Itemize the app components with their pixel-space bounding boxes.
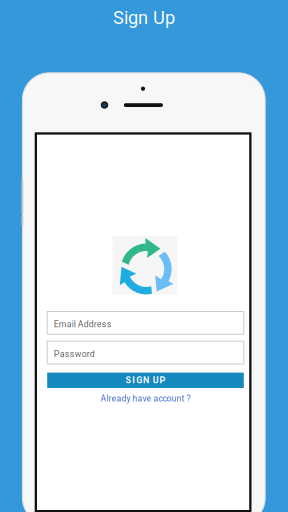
staticText: Password [54, 349, 95, 359]
staticText: G [136, 375, 142, 386]
button[interactable]: Already have account ? [47, 391, 244, 405]
button[interactable]: S [47, 373, 244, 388]
staticText: U [153, 375, 159, 386]
staticText: P [160, 375, 166, 386]
button[interactable]: Email Address [47, 311, 244, 334]
staticText: I [132, 375, 135, 386]
staticText: N [143, 375, 149, 386]
staticText: Sign Up [113, 7, 175, 28]
staticText: S [125, 375, 131, 386]
button[interactable]: Password [47, 341, 244, 364]
staticText: Email Address [54, 319, 112, 329]
staticText: Already have account ? [100, 393, 190, 403]
